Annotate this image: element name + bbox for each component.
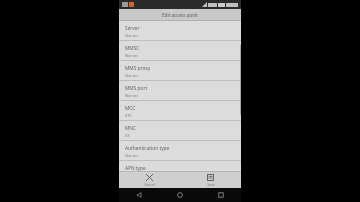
staticText: Save (207, 182, 215, 187)
button[interactable]: Cancel (119, 172, 180, 188)
button[interactable]: Back (119, 188, 159, 202)
button[interactable]: Server (119, 21, 241, 40)
staticText: MNC (125, 125, 137, 132)
button[interactable]: Authentication type (119, 141, 241, 160)
staticText: 03 (125, 133, 130, 138)
staticText: Not set (125, 93, 138, 98)
staticText: Not set (125, 53, 138, 58)
staticText: MMSC (125, 45, 140, 52)
button[interactable]: APN type (119, 161, 241, 171)
staticText: APN type (125, 165, 146, 171)
staticText: Not set (125, 73, 138, 78)
staticText: Not set (125, 153, 138, 158)
staticText: MCC (125, 105, 136, 112)
staticText: 470 (125, 113, 132, 118)
staticText: Cancel (144, 182, 155, 187)
button[interactable]: Save (180, 172, 241, 188)
button[interactable]: Home (159, 188, 200, 202)
button[interactable]: MNC (119, 121, 241, 140)
button[interactable]: MCC (119, 101, 241, 120)
staticText: MMS proxy (125, 65, 151, 72)
button[interactable]: MMS port (119, 81, 241, 100)
button[interactable]: MMS proxy (119, 61, 241, 80)
staticText: Edit access point (162, 12, 198, 18)
button[interactable]: MMSC (119, 41, 241, 60)
button[interactable]: Recents (200, 188, 241, 202)
staticText: MMS port (125, 85, 148, 92)
staticText: Server (125, 25, 140, 32)
staticText: Authentication type (125, 145, 170, 152)
staticText: Not set (125, 33, 138, 38)
